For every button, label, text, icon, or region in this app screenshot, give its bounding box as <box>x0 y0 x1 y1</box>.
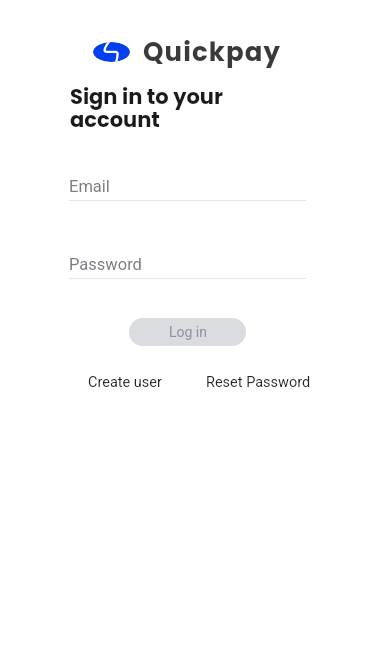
button[interactable]: Log in <box>129 318 246 346</box>
staticText: Sign in to your account <box>70 82 240 134</box>
staticText: Quickpay <box>143 34 282 70</box>
staticText: Password <box>69 255 142 274</box>
staticText: Log in <box>169 324 207 340</box>
staticText: Reset Password <box>206 374 311 391</box>
staticText: Create user <box>88 374 162 391</box>
button[interactable]: Reset Password <box>204 371 313 394</box>
staticText: Email <box>69 177 110 196</box>
button[interactable]: Create user <box>86 371 164 394</box>
other: Quickpay logo <box>93 42 130 62</box>
